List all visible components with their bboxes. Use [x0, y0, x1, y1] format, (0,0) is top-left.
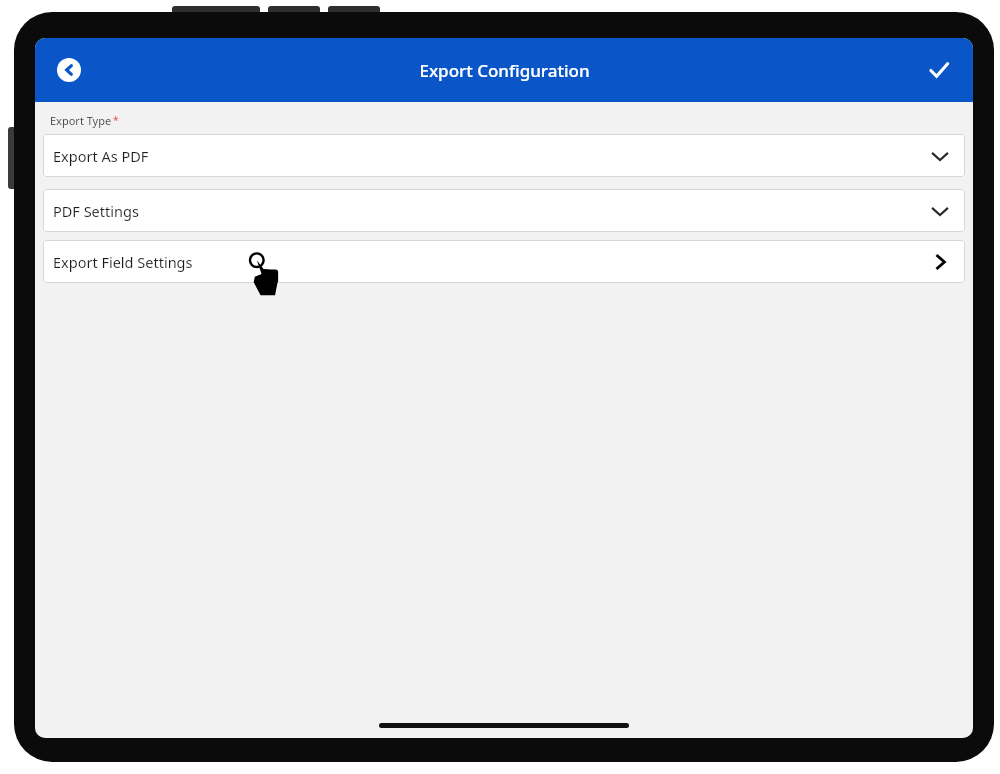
button[interactable]: PDF Settings — [43, 189, 965, 232]
button[interactable]: Export As PDF — [43, 134, 965, 177]
staticText: Export As PDF — [53, 146, 149, 166]
button[interactable]: Back — [49, 50, 89, 90]
staticText: PDF Settings — [53, 201, 139, 221]
button[interactable]: Export Field Settings — [43, 240, 965, 283]
staticText: Export Field Settings — [53, 252, 193, 272]
staticText: Export Configuration — [419, 59, 590, 82]
staticText: * — [113, 113, 119, 127]
staticText: Export Type — [50, 113, 112, 128]
button[interactable]: Confirm — [919, 50, 959, 90]
